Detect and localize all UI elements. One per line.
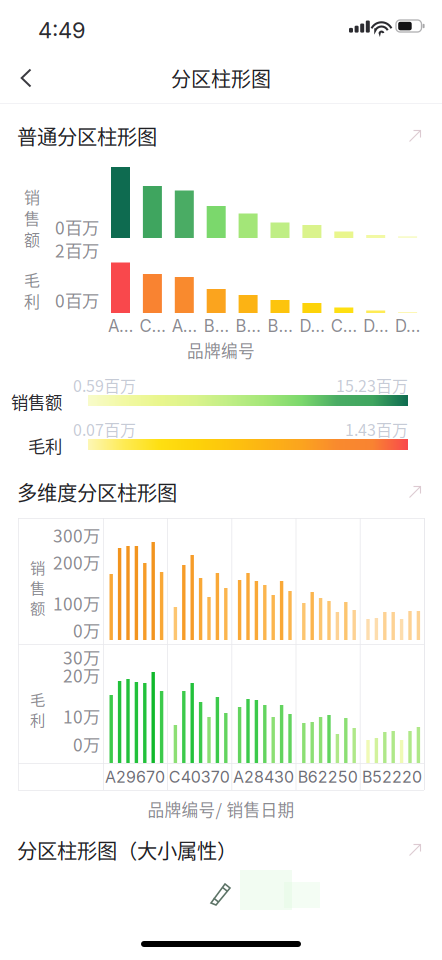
staticText: 分区柱形图（大小属性） (17, 835, 237, 865)
staticText: C… (331, 316, 357, 336)
staticText: B… (204, 316, 229, 336)
staticText: 多维度分区柱形图 (17, 477, 177, 507)
staticText: 分区柱形图 (171, 63, 271, 92)
staticText: B52220 (362, 767, 422, 787)
staticText: C… (139, 316, 165, 336)
staticText: 0.59百万 (73, 373, 136, 397)
staticText: 0万 (73, 617, 100, 643)
staticText: 200万 (53, 549, 100, 575)
staticText: 0百万 (55, 287, 99, 313)
staticText: 销 (30, 556, 45, 578)
staticText: A… (108, 316, 133, 336)
staticText: 1.43百万 (345, 417, 408, 441)
staticText: 售 (24, 206, 40, 229)
staticText: 300万 (53, 522, 100, 548)
staticText: A29670 (105, 767, 165, 787)
staticText: A28430 (233, 767, 294, 787)
staticText: 普通分区柱形图 (17, 121, 157, 151)
staticText: 品牌编号 (187, 338, 255, 362)
staticText: 0.07百万 (73, 417, 136, 441)
staticText: B… (236, 316, 261, 336)
staticText: B… (267, 316, 292, 336)
staticText: 毛利 (28, 433, 62, 458)
button[interactable]: Expand chart (400, 477, 430, 507)
staticText: D… (395, 316, 420, 336)
button[interactable]: Back (3, 55, 49, 101)
staticText: 0百万 (55, 214, 99, 240)
staticText: C40370 (169, 767, 230, 787)
staticText: 15.23百万 (336, 373, 408, 397)
staticText: 销售额 (11, 389, 62, 414)
staticText: D… (299, 316, 324, 336)
button[interactable]: Expand chart (400, 121, 430, 151)
staticText: 利 (24, 289, 40, 312)
staticText: A… (172, 316, 197, 336)
staticText: 30万 (63, 644, 100, 670)
staticText: 20万 (63, 662, 100, 688)
staticText: 品牌编号/ 销售日期 (147, 797, 294, 821)
staticText: 4:49 (38, 17, 86, 44)
staticText: 2百万 (55, 237, 99, 263)
staticText: 销 (24, 185, 40, 208)
staticText: 毛 (24, 268, 40, 291)
staticText: 10万 (63, 703, 100, 729)
staticText: B62250 (298, 767, 358, 787)
button[interactable]: Expand chart (400, 835, 430, 865)
staticText: 额 (30, 596, 45, 619)
staticText: 100万 (53, 590, 100, 616)
staticText: 利 (30, 708, 45, 730)
staticText: 毛 (30, 688, 45, 710)
staticText: 额 (24, 227, 40, 250)
staticText: D… (363, 316, 388, 336)
staticText: 售 (30, 576, 45, 598)
staticText: 0万 (73, 731, 100, 757)
